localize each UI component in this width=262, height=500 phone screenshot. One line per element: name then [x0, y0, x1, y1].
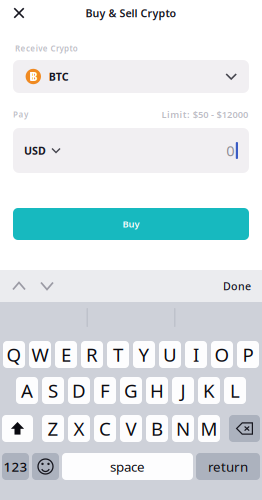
button[interactable]: E [55, 341, 77, 368]
staticText: T [113, 342, 123, 367]
staticText: return [208, 458, 248, 475]
staticText: J [180, 378, 185, 403]
button[interactable]: U [159, 341, 181, 368]
button[interactable]: USD [24, 137, 60, 164]
button[interactable]: Numbers [2, 453, 29, 480]
button[interactable]: F [94, 377, 116, 404]
button[interactable]: S [42, 377, 64, 404]
staticText: Z [47, 416, 58, 441]
staticText: B [30, 68, 38, 84]
staticText: P [242, 342, 253, 367]
staticText: Buy & Sell Crypto [85, 6, 176, 20]
button[interactable]: L [224, 377, 246, 404]
staticText: BTC [49, 69, 69, 84]
staticText: Limit: $50 - $12000 [162, 108, 248, 121]
button[interactable]: Delete [229, 415, 260, 442]
staticText: L [230, 378, 240, 403]
staticText: N [176, 416, 190, 441]
staticText: K [203, 378, 215, 403]
button[interactable]: B [13, 60, 249, 93]
button[interactable]: N [172, 415, 194, 442]
button[interactable]: Next field [34, 271, 60, 301]
staticText: C [99, 416, 111, 441]
button[interactable]: J [172, 377, 194, 404]
staticText: H [150, 378, 164, 403]
staticText: USD [24, 143, 46, 158]
staticText: D [72, 378, 86, 403]
button[interactable]: V [120, 415, 142, 442]
staticText: Q [6, 342, 21, 367]
staticText: B [151, 416, 163, 441]
staticText: 0 [226, 141, 234, 160]
staticText: U [163, 342, 177, 367]
button[interactable]: B [146, 415, 168, 442]
staticText: Receive Crypto [15, 43, 78, 54]
button[interactable]: C [94, 415, 116, 442]
button[interactable]: Previous field [6, 271, 32, 301]
button[interactable]: T [107, 341, 129, 368]
staticText: E [61, 342, 71, 367]
staticText: W [31, 342, 48, 367]
button[interactable]: Z [42, 415, 64, 442]
button[interactable]: Close [6, 0, 32, 26]
button[interactable]: Emoji [32, 453, 59, 480]
staticText: X [73, 416, 84, 441]
button[interactable]: H [146, 377, 168, 404]
button[interactable]: R [81, 341, 103, 368]
staticText: R [86, 342, 98, 367]
button[interactable]: Done [218, 271, 256, 301]
button[interactable]: I [185, 341, 207, 368]
staticText: V [125, 416, 136, 441]
button[interactable]: Shift [2, 415, 33, 442]
staticText: Done [223, 279, 251, 293]
button[interactable]: W [29, 341, 51, 368]
staticText: A [21, 378, 33, 403]
button[interactable]: P [237, 341, 259, 368]
button[interactable]: X [68, 415, 90, 442]
staticText: Pay [13, 109, 28, 120]
staticText: 123 [3, 458, 27, 475]
button[interactable]: A [16, 377, 38, 404]
staticText: M [200, 416, 217, 441]
staticText: space [110, 458, 145, 475]
staticText: I [193, 342, 199, 367]
staticText: F [100, 378, 110, 403]
staticText: Buy [122, 218, 139, 230]
staticText: O [214, 342, 229, 367]
staticText: Y [138, 342, 149, 367]
staticText: S [48, 378, 58, 403]
button[interactable]: Buy [13, 208, 249, 240]
staticText: G [124, 378, 138, 403]
button[interactable]: M [198, 415, 220, 442]
button[interactable]: space [62, 453, 193, 480]
button[interactable]: Y [133, 341, 155, 368]
button[interactable]: D [68, 377, 90, 404]
button[interactable]: O [211, 341, 233, 368]
button[interactable]: return [196, 453, 260, 480]
button[interactable]: K [198, 377, 220, 404]
button[interactable]: Q [3, 341, 25, 368]
button[interactable]: G [120, 377, 142, 404]
